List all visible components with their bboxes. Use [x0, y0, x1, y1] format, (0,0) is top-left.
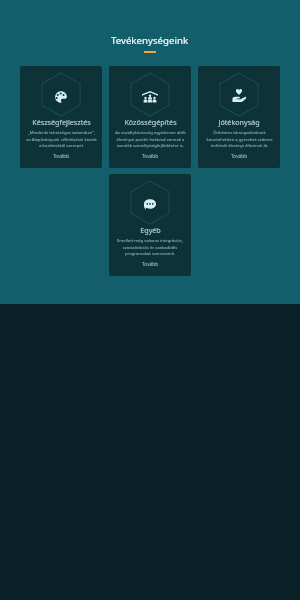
button[interactable]: Egyéb ikon: [109, 174, 191, 276]
staticText: Jótékonyság: [218, 117, 260, 127]
other: Készségfejlesztés ikon: [42, 73, 80, 116]
staticText: Készségfejlesztés: [32, 117, 91, 127]
staticText: Tovább: [142, 153, 159, 160]
button[interactable]: Készségfejlesztés ikon: [20, 66, 102, 168]
staticText: Tovább: [142, 261, 159, 268]
staticText: „Mindenki tehetséges valamiben”, az Alap…: [26, 130, 97, 148]
other: Közösségépítés ikon: [131, 73, 169, 116]
staticText: Közösségépítés: [124, 117, 177, 127]
button[interactable]: Jótékonyság ikon: [198, 66, 280, 168]
button[interactable]: Tovább: [53, 153, 70, 160]
other: Jótékonyság ikon: [220, 73, 258, 116]
staticText: Az osztályközösség együttesen átélt élmé…: [115, 130, 186, 148]
staticText: Egyéb: [140, 225, 161, 235]
staticText: Tovább: [231, 153, 248, 160]
button[interactable]: Tovább: [142, 153, 159, 160]
staticText: Emellett még számos integrációs, szocial…: [117, 238, 183, 256]
other: Egyéb ikon: [131, 181, 169, 224]
button[interactable]: Tovább: [231, 153, 248, 160]
staticText: Tevékenységeink: [111, 34, 189, 47]
button[interactable]: Közösségépítés ikon: [109, 66, 191, 168]
staticText: Tovább: [53, 153, 70, 160]
button[interactable]: Tovább: [142, 261, 159, 268]
staticText: Önkéntes támogatóinknak köszönhetően a g…: [206, 130, 273, 148]
